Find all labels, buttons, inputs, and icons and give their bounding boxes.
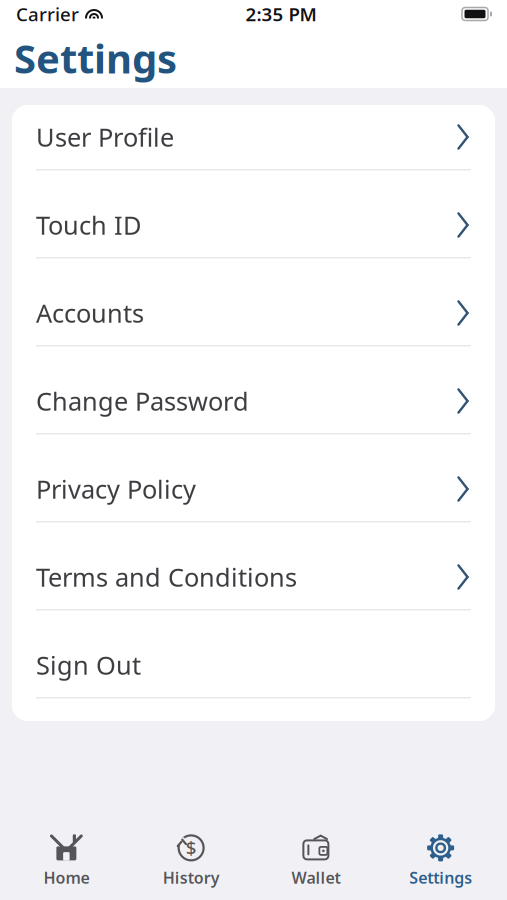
button[interactable]: User Profile bbox=[12, 105, 495, 193]
staticText: Accounts bbox=[36, 296, 144, 330]
staticText: User Profile bbox=[36, 120, 174, 154]
button[interactable]: Change Password bbox=[12, 369, 495, 457]
staticText: Home bbox=[43, 867, 89, 888]
staticText: 2:35 PM bbox=[245, 2, 316, 26]
staticText: Change Password bbox=[36, 384, 249, 418]
button[interactable]: Accounts bbox=[12, 281, 495, 369]
button[interactable]: Terms and Conditions bbox=[12, 545, 495, 633]
staticText: Privacy Policy bbox=[36, 472, 196, 506]
staticText: History bbox=[163, 867, 220, 888]
button[interactable]: Privacy Policy bbox=[12, 457, 495, 545]
button[interactable]: Home bbox=[4, 830, 129, 892]
staticText: $ bbox=[186, 835, 197, 860]
staticText: Sign Out bbox=[36, 648, 141, 682]
button[interactable]: Sign Out bbox=[12, 633, 495, 721]
staticText: Terms and Conditions bbox=[36, 560, 297, 594]
staticText: Settings bbox=[14, 31, 177, 84]
button[interactable]: Wallet bbox=[253, 830, 378, 892]
staticText: Carrier bbox=[16, 2, 79, 26]
staticText: Wallet bbox=[291, 867, 340, 888]
staticText: Settings bbox=[409, 867, 472, 888]
button[interactable]: $ bbox=[129, 830, 254, 892]
staticText: Touch ID bbox=[36, 208, 141, 242]
button[interactable]: Touch ID bbox=[12, 193, 495, 281]
button[interactable]: Settings bbox=[378, 830, 503, 892]
